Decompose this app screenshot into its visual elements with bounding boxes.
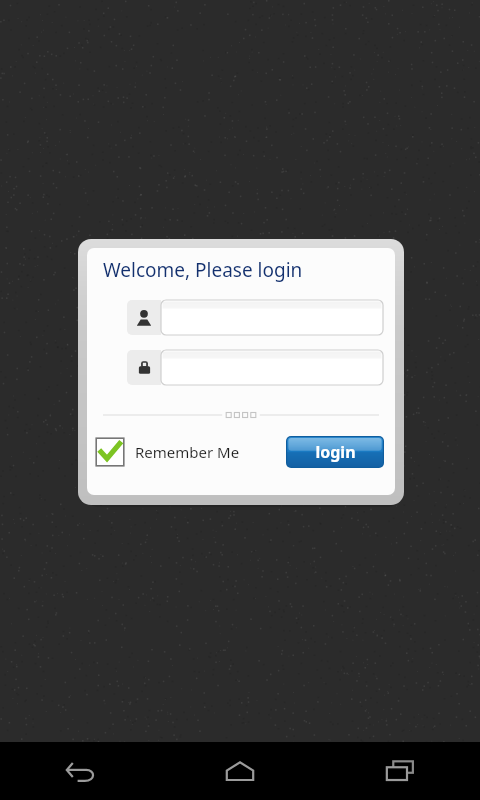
button[interactable] — [127, 300, 383, 335]
staticText: Remember Me — [135, 442, 240, 462]
button[interactable]: login — [286, 436, 384, 468]
button[interactable] — [127, 350, 383, 385]
staticText: Welcome, Please login — [103, 257, 303, 283]
button[interactable]: Remember Me — [95, 437, 240, 467]
button[interactable]: Recent apps — [320, 742, 480, 800]
staticText: login — [315, 441, 356, 463]
button[interactable]: Back — [0, 742, 160, 800]
button[interactable]: Home — [160, 742, 320, 800]
